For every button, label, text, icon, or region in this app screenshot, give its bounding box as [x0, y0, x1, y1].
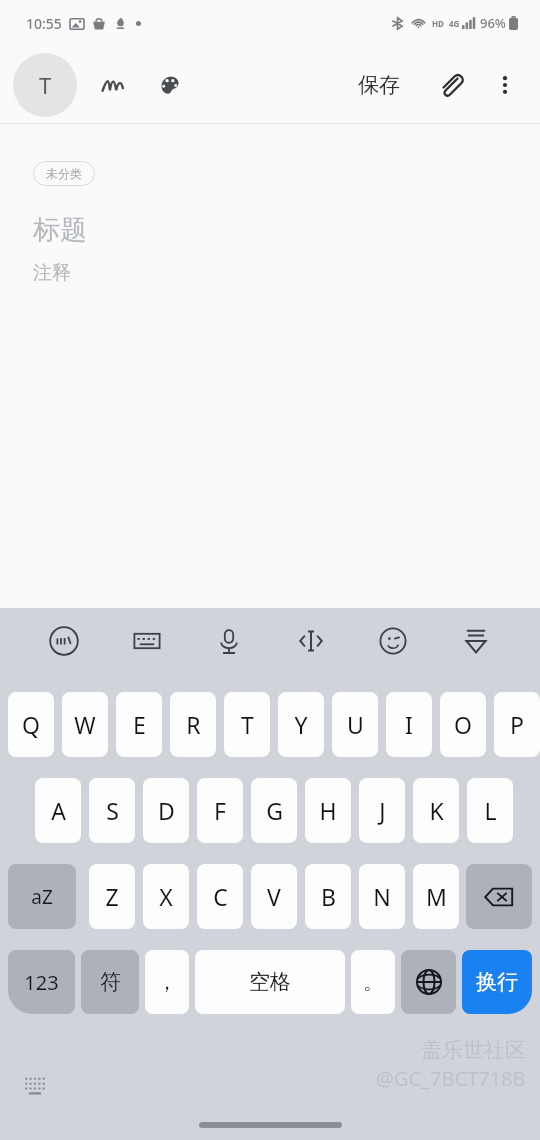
button[interactable]: S [89, 778, 135, 843]
staticText: 标题 [33, 213, 87, 247]
staticText: 96% [480, 14, 506, 32]
staticText: L [484, 795, 497, 826]
staticText: 。 [363, 970, 383, 995]
button[interactable]: N [359, 864, 405, 929]
staticText: V [267, 881, 281, 912]
staticText: 未分类 [46, 166, 82, 181]
staticText: K [429, 795, 444, 826]
staticText: E [133, 709, 146, 740]
button[interactable]: 。 [351, 950, 395, 1014]
staticText: N [373, 881, 391, 912]
button[interactable]: C [197, 864, 243, 929]
button[interactable]: H [305, 778, 351, 843]
button[interactable]: Z [89, 864, 135, 929]
button[interactable]: MIC [203, 615, 255, 667]
button[interactable]: DWN [450, 615, 502, 667]
button[interactable]: F [197, 778, 243, 843]
staticText: I [405, 709, 413, 740]
staticText: P [510, 709, 524, 740]
button[interactable]: 空格 [195, 950, 345, 1014]
staticText: T [241, 709, 254, 740]
button[interactable]: Q [8, 692, 54, 757]
button[interactable]: Color palette [145, 61, 193, 109]
button[interactable]: D [143, 778, 189, 843]
button[interactable]: I [386, 692, 432, 757]
button[interactable]: Delete [466, 864, 532, 929]
button[interactable]: IME [38, 615, 90, 667]
button[interactable]: Attach [428, 62, 474, 108]
staticText: ， [157, 970, 177, 995]
staticText: X [159, 881, 173, 912]
button[interactable]: 换行 [462, 950, 532, 1014]
button[interactable]: L [467, 778, 513, 843]
button[interactable]: P [494, 692, 540, 757]
staticText: U [347, 709, 364, 740]
staticText: F [214, 795, 226, 826]
staticText: 空格 [249, 969, 291, 995]
button[interactable]: W [62, 692, 108, 757]
staticText: S [106, 795, 119, 826]
staticText: 注释 [33, 261, 71, 285]
button[interactable]: B [305, 864, 351, 929]
staticText: G [266, 795, 283, 826]
button[interactable]: K [413, 778, 459, 843]
staticText: T [39, 70, 52, 100]
button[interactable]: Y [278, 692, 324, 757]
button[interactable]: Handwriting [89, 61, 137, 109]
staticText: C [213, 881, 228, 912]
button[interactable]: U [332, 692, 378, 757]
staticText: M [426, 881, 447, 912]
staticText: 10:55 [26, 14, 62, 33]
staticText: aZ [31, 884, 53, 910]
staticText: Z [105, 881, 119, 912]
button[interactable]: KBD [121, 615, 173, 667]
button[interactable]: 123 [8, 950, 75, 1014]
button[interactable]: X [143, 864, 189, 929]
button[interactable]: O [440, 692, 486, 757]
button[interactable]: M [413, 864, 459, 929]
button[interactable]: J [359, 778, 405, 843]
staticText: 盖乐世社区 [421, 1037, 526, 1063]
staticText: A [51, 795, 66, 826]
button[interactable]: Text mode [13, 53, 77, 117]
button[interactable]: T [224, 692, 270, 757]
button[interactable]: 符 [81, 950, 139, 1014]
staticText: @GC_7BCT718B [376, 1065, 526, 1092]
button[interactable]: E [116, 692, 162, 757]
staticText: 换行 [476, 969, 518, 995]
staticText: J [379, 795, 386, 826]
button[interactable]: Hide keyboard [18, 1068, 52, 1102]
button[interactable]: R [170, 692, 216, 757]
staticText: 符 [100, 969, 121, 995]
button[interactable]: 未分类 [33, 161, 95, 186]
button[interactable]: A [35, 778, 81, 843]
button[interactable]: G [251, 778, 297, 843]
staticText: Y [294, 709, 308, 740]
staticText: HD [432, 18, 444, 29]
staticText: 4G [449, 18, 460, 29]
staticText: H [319, 795, 337, 826]
button[interactable]: More options [482, 62, 528, 108]
staticText: Q [22, 709, 40, 740]
button[interactable]: 保存 [348, 64, 410, 106]
button[interactable]: aZ [8, 864, 76, 929]
staticText: 保存 [358, 72, 400, 98]
staticText: 123 [24, 969, 59, 996]
staticText: R [186, 709, 201, 740]
button[interactable]: ， [145, 950, 189, 1014]
staticText: D [158, 795, 175, 826]
button[interactable]: Switch language [401, 950, 456, 1014]
staticText: B [321, 881, 336, 912]
button[interactable]: CUR [285, 615, 337, 667]
staticText: W [74, 709, 96, 740]
staticText: O [454, 709, 472, 740]
button[interactable]: EMO [367, 615, 419, 667]
button[interactable]: V [251, 864, 297, 929]
